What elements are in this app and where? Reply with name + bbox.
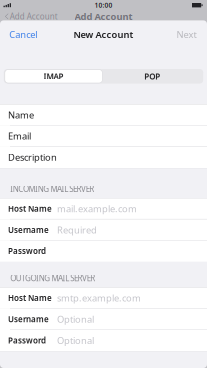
button[interactable]: Next — [169, 24, 207, 45]
staticText: Host Name — [8, 203, 52, 214]
staticText: Email — [8, 130, 31, 142]
staticText: OUTGOING MAIL SERVER — [10, 273, 95, 283]
staticText: Next — [176, 28, 196, 41]
staticText: Username — [8, 314, 49, 324]
button[interactable]: Host Name — [0, 288, 207, 309]
staticText: Add Account — [10, 11, 58, 22]
button[interactable]: POP — [102, 69, 202, 84]
staticText: mail.example.com — [57, 202, 137, 215]
staticText: INCOMING MAIL SERVER — [10, 184, 94, 194]
staticText: 10:00 — [94, 1, 112, 10]
button[interactable]: Password — [0, 241, 207, 262]
button[interactable]: Cancel — [0, 24, 44, 45]
staticText: Cancel — [9, 28, 37, 41]
staticText: smtp.example.com — [57, 292, 141, 304]
staticText: New Account — [73, 28, 133, 41]
staticText: Host Name — [8, 293, 52, 303]
staticText: Optional — [57, 334, 94, 346]
button[interactable]: Description — [0, 147, 207, 168]
button[interactable]: Username — [0, 309, 207, 330]
button[interactable]: Password — [0, 330, 207, 351]
staticText: IMAP — [44, 71, 64, 82]
staticText: Username — [8, 224, 49, 235]
staticText: Password — [8, 335, 46, 346]
staticText: Optional — [57, 313, 94, 325]
staticText: Name — [8, 109, 34, 121]
staticText: Password — [8, 246, 46, 256]
button[interactable]: IMAP — [4, 70, 102, 83]
button[interactable]: Username — [0, 219, 207, 241]
staticText: POP — [144, 71, 160, 82]
button[interactable]: Host Name — [0, 198, 207, 219]
button[interactable]: Name — [0, 104, 207, 126]
staticText: Description — [8, 151, 57, 163]
staticText: Required — [57, 224, 97, 236]
staticText: Add Account — [74, 10, 132, 23]
button[interactable]: Email — [0, 126, 207, 147]
